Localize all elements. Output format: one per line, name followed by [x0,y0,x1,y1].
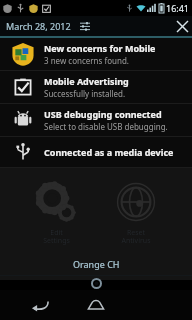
button[interactable]: New concerns for Mobile Advertising [0,38,192,70]
staticText: 3 new concerns found. [44,55,129,66]
staticText: New concerns for Mobile Advertising [44,42,184,54]
staticText: Successfully installed. [44,88,126,99]
staticText: 16:41 [166,2,190,14]
staticText: Orange CH [73,258,120,270]
staticText: Select to disable USB debugging. [44,121,168,132]
button[interactable]: USB debugging connected [0,104,192,136]
button[interactable]: Mobile Advertising [0,71,192,103]
staticText: Connected as a media device [44,146,174,158]
staticText: USB debugging connected [44,108,162,120]
staticText: Edit Settings [43,228,70,245]
staticText: Reset Antivirus [121,228,151,245]
button[interactable]: Settings [77,18,93,34]
staticText: Mobile Advertising [44,75,129,87]
button[interactable]: Clear all notifications [172,16,192,36]
staticText: March 28, 2012 [6,20,71,32]
button[interactable]: Back [22,290,58,320]
button[interactable]: Home [78,290,114,320]
button[interactable]: Connected as a media device [0,137,192,167]
